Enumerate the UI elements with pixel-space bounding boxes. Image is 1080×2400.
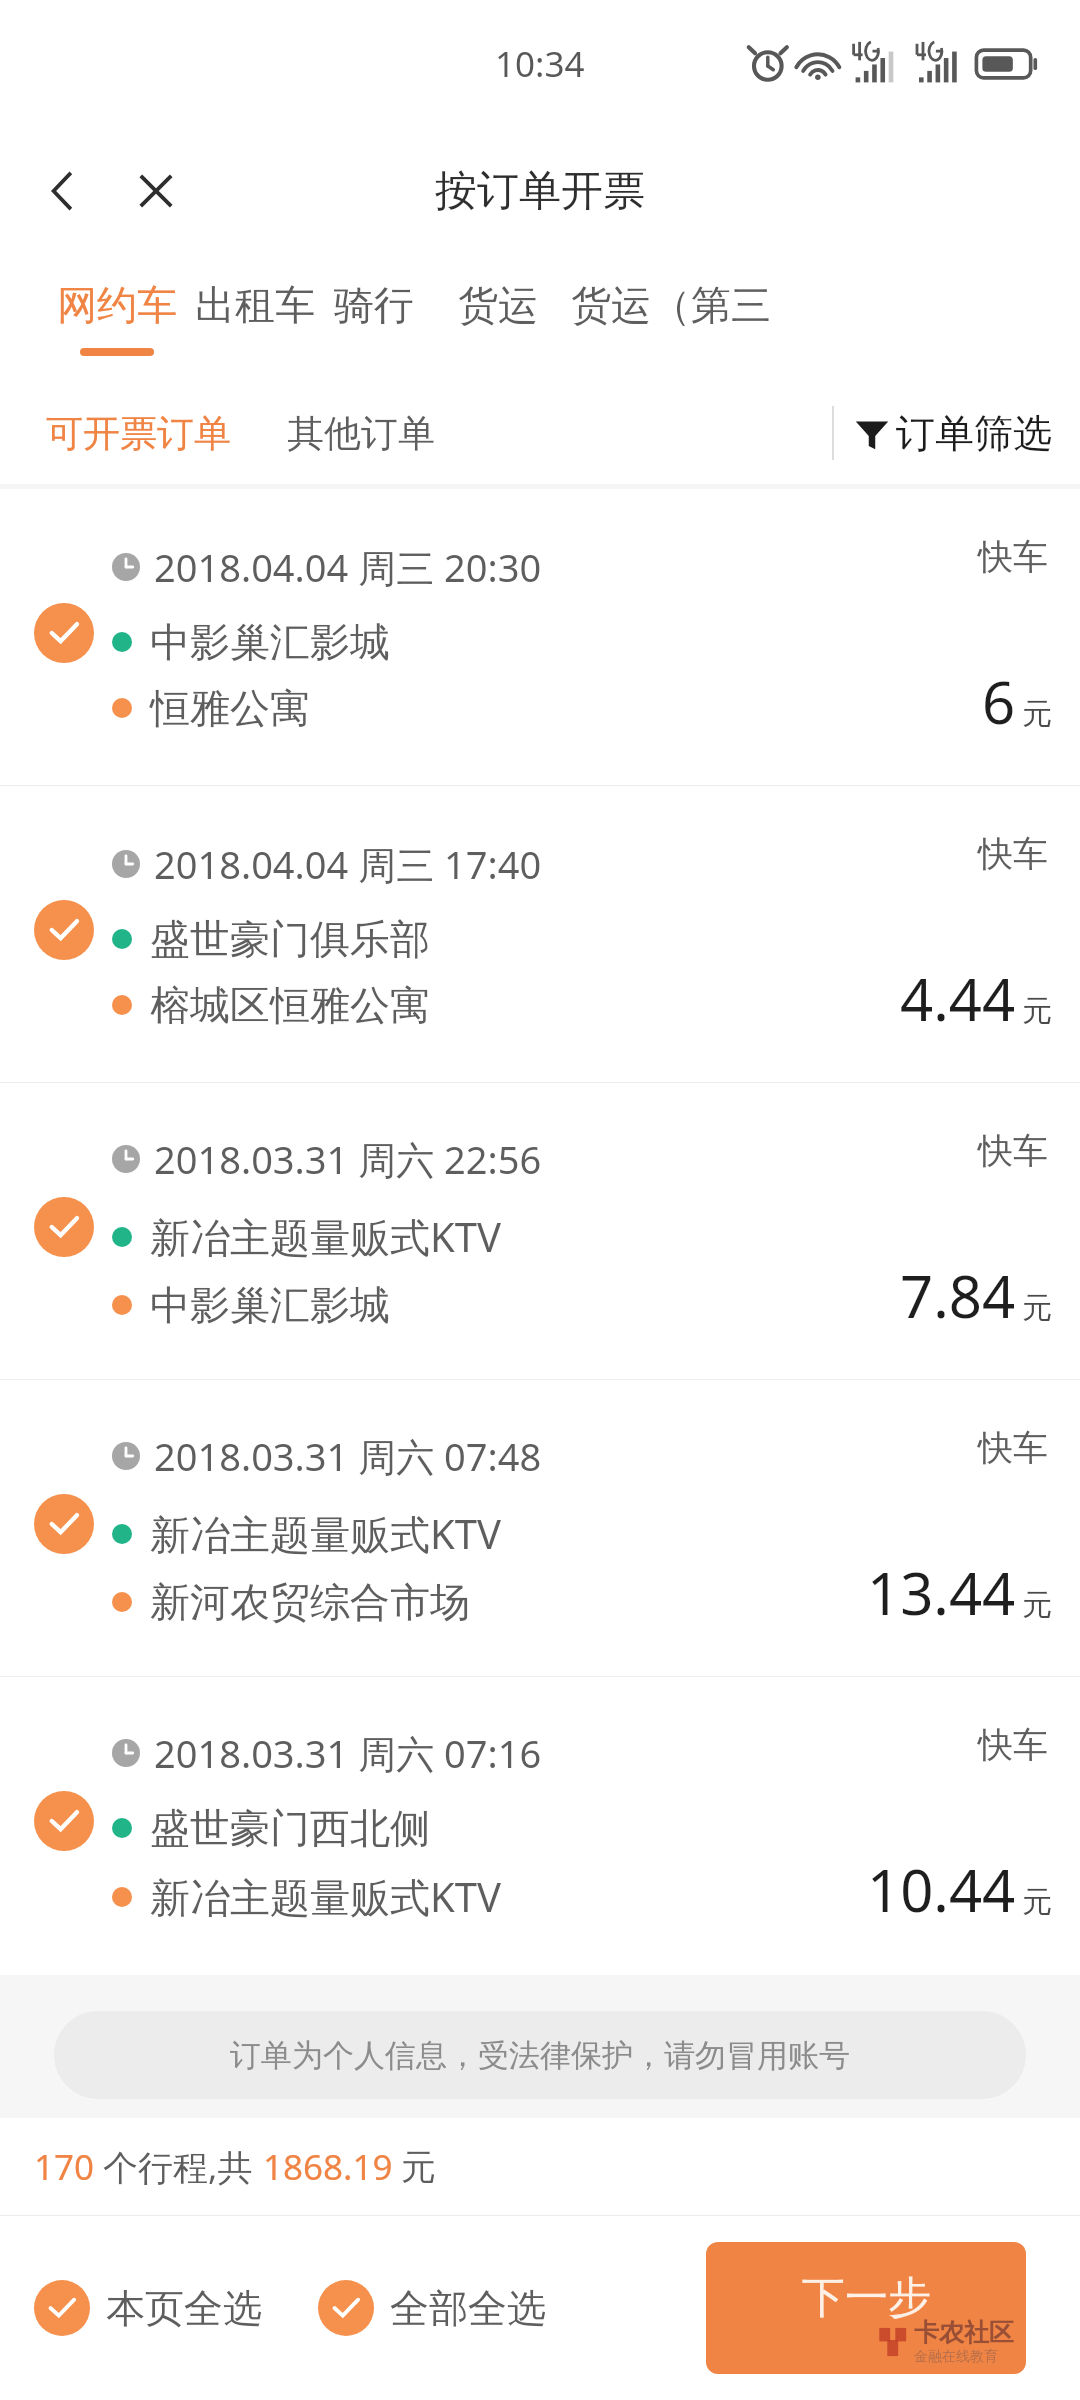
staticText: 盛世豪门俱乐部 bbox=[150, 914, 430, 964]
staticText: 13.44 bbox=[867, 1553, 1016, 1632]
other: Selected bbox=[34, 1494, 94, 1554]
staticText: 快车 bbox=[978, 1426, 1048, 1470]
staticText: 4.44 bbox=[900, 959, 1016, 1038]
staticText: 榕城区恒雅公寓 bbox=[150, 980, 430, 1030]
button[interactable]: 订单筛选 bbox=[832, 406, 1052, 460]
button[interactable]: Selected bbox=[0, 1380, 1080, 1676]
staticText: 本页全选 bbox=[106, 2284, 262, 2333]
staticText: 恒雅公寓 bbox=[150, 683, 310, 733]
other: Selected bbox=[34, 900, 94, 960]
button[interactable]: Selected bbox=[0, 786, 1080, 1082]
button[interactable]: 其他订单 bbox=[279, 394, 443, 473]
button[interactable]: 可开票订单 bbox=[38, 394, 239, 473]
button[interactable]: 本页全选 bbox=[24, 2268, 272, 2348]
staticText: 快车 bbox=[978, 1723, 1048, 1767]
button[interactable]: 网约车 bbox=[48, 254, 186, 382]
staticText: 2018.04.04 周三 20:30 bbox=[154, 541, 542, 593]
button[interactable]: Selected bbox=[0, 1083, 1080, 1379]
staticText: 新冶主题量贩式KTV bbox=[150, 1869, 501, 1924]
staticText: 个行程,共 bbox=[103, 2143, 253, 2191]
staticText: 元 bbox=[401, 2145, 436, 2189]
button[interactable]: 骑行 bbox=[324, 254, 424, 382]
staticText: 下一步 bbox=[802, 2271, 931, 2325]
staticText: 10:34 bbox=[495, 40, 585, 88]
staticText: 卡农社区 bbox=[914, 2317, 1014, 2348]
staticText: 元 bbox=[1022, 1883, 1052, 1921]
staticText: 快车 bbox=[978, 1129, 1048, 1173]
staticText: 盛世豪门西北侧 bbox=[150, 1803, 430, 1853]
staticText: 10.44 bbox=[867, 1850, 1016, 1929]
staticText: 元 bbox=[1022, 992, 1052, 1030]
staticText: 其他订单 bbox=[287, 410, 435, 457]
other: Selected bbox=[34, 1791, 94, 1851]
staticText: 金融在线教育 bbox=[914, 2348, 998, 2366]
staticText: 6 bbox=[982, 662, 1016, 741]
button[interactable]: 出租车 bbox=[186, 254, 324, 382]
staticText: 元 bbox=[1022, 1586, 1052, 1624]
other: Selected bbox=[34, 603, 94, 663]
staticText: 快车 bbox=[978, 535, 1048, 579]
button[interactable]: 货运 bbox=[448, 254, 548, 382]
staticText: 网约车 bbox=[57, 280, 177, 330]
staticText: 2018.03.31 周六 07:16 bbox=[154, 1727, 542, 1779]
staticText: 全部全选 bbox=[390, 2284, 546, 2333]
staticText: 1868.19 bbox=[263, 2143, 393, 2191]
staticText: 订单为个人信息，受法律保护，请勿冒用账号 bbox=[230, 2036, 850, 2075]
staticText: 快车 bbox=[978, 832, 1048, 876]
staticText: 新河农贸综合市场 bbox=[150, 1577, 470, 1627]
staticText: 货运 bbox=[458, 280, 538, 330]
button[interactable]: Selected bbox=[0, 489, 1080, 785]
staticText: 2018.04.04 周三 17:40 bbox=[154, 838, 542, 890]
staticText: 新冶主题量贩式KTV bbox=[150, 1506, 501, 1561]
staticText: 7.84 bbox=[900, 1256, 1016, 1335]
staticText: 170 bbox=[34, 2143, 95, 2191]
staticText: 货运（第三 bbox=[571, 280, 771, 330]
staticText: 中影巢汇影城 bbox=[150, 617, 390, 667]
staticText: 新冶主题量贩式KTV bbox=[150, 1209, 501, 1264]
staticText: 可开票订单 bbox=[46, 410, 231, 457]
button[interactable]: 下一步 bbox=[706, 2242, 1026, 2374]
staticText: 订单筛选 bbox=[896, 409, 1052, 458]
staticText: 出租车 bbox=[195, 280, 315, 330]
button[interactable]: 全部全选 bbox=[308, 2268, 556, 2348]
staticText: 2018.03.31 周六 22:56 bbox=[154, 1133, 542, 1185]
staticText: 元 bbox=[1022, 1289, 1052, 1327]
staticText: 元 bbox=[1022, 695, 1052, 733]
staticText: 中影巢汇影城 bbox=[150, 1280, 390, 1330]
button[interactable]: Close bbox=[122, 157, 190, 225]
button[interactable]: 货运（第三 bbox=[566, 254, 776, 382]
button[interactable]: Selected bbox=[0, 1677, 1080, 1973]
staticText: 2018.03.31 周六 07:48 bbox=[154, 1430, 542, 1482]
staticText: 骑行 bbox=[334, 280, 414, 330]
staticText: 按订单开票 bbox=[435, 165, 645, 218]
other: Selected bbox=[34, 1197, 94, 1257]
button[interactable]: Back bbox=[28, 157, 96, 225]
